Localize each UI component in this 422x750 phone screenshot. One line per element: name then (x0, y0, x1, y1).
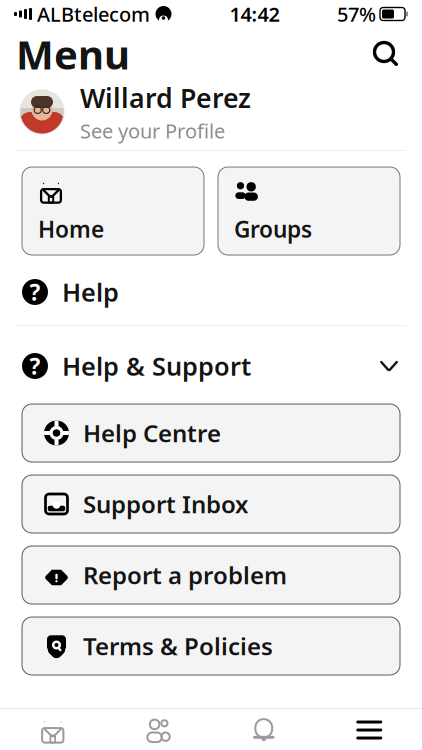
staticText: Menu (16, 27, 130, 80)
button[interactable]: ? (0, 340, 422, 392)
button[interactable]: Help Centre (22, 404, 400, 462)
staticText: Groups (234, 214, 312, 244)
staticText: Help (62, 275, 119, 309)
staticText: Home (38, 214, 104, 244)
staticText: See your Profile (80, 117, 225, 144)
button[interactable]: Support Inbox (22, 475, 400, 533)
staticText: 14:42 (229, 1, 279, 27)
button[interactable]: Terms & Policies (22, 617, 400, 675)
button[interactable]: Home (22, 167, 204, 255)
button[interactable]: Home (0, 710, 105, 750)
staticText: Help & Support (62, 349, 251, 383)
staticText: 57% (337, 1, 376, 27)
button[interactable]: Report a problem (22, 546, 400, 604)
button[interactable]: Notifications (211, 710, 316, 750)
staticText: ? (29, 277, 40, 307)
staticText: Terms & Policies (83, 630, 273, 662)
staticText: ALBtelecom (37, 1, 150, 27)
staticText: Willard Perez (80, 80, 251, 115)
button[interactable]: Search (366, 34, 406, 74)
button[interactable]: Menu (316, 710, 422, 750)
staticText: Support Inbox (83, 488, 248, 520)
staticText: Report a problem (83, 559, 287, 591)
button[interactable]: Friends (105, 710, 211, 750)
button[interactable]: Groups (218, 167, 400, 255)
staticText: ? (29, 351, 40, 381)
staticText: Help Centre (83, 417, 221, 449)
button[interactable]: ? (0, 265, 422, 319)
button[interactable]: Willard Perez (0, 80, 422, 144)
